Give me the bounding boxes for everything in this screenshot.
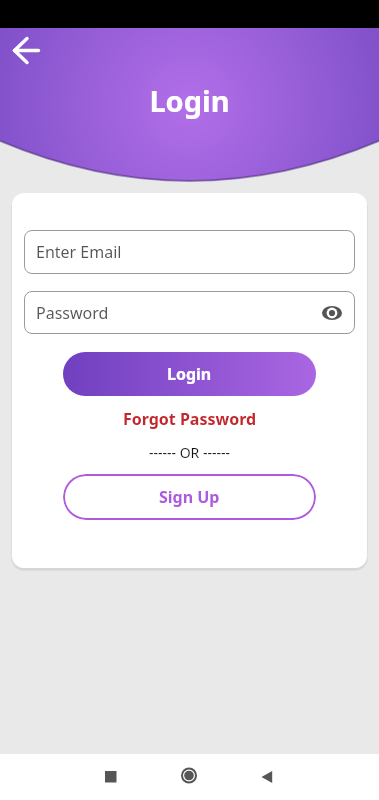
staticText: Enter Email (36, 241, 122, 263)
staticText: ------ OR ------ (0, 443, 379, 462)
button[interactable]: Password (24, 291, 355, 334)
button[interactable]: Sign Up (63, 474, 316, 520)
button[interactable] (8, 31, 46, 69)
staticText: Login (0, 81, 379, 120)
staticText: Sign Up (159, 486, 220, 508)
button[interactable]: Forgot Password (0, 408, 379, 430)
button[interactable]: Login (63, 352, 316, 396)
staticText: Login (167, 363, 212, 385)
button[interactable]: Enter Email (24, 230, 355, 274)
button[interactable] (322, 306, 342, 320)
staticText: Password (36, 302, 109, 324)
